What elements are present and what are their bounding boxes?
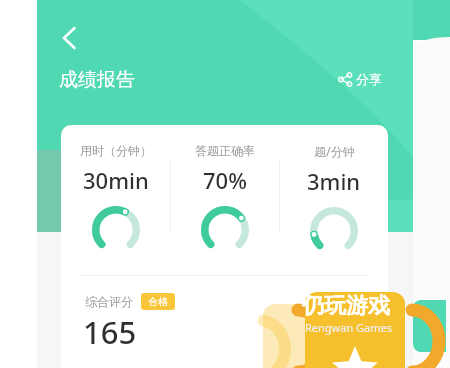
staticText: 合格 xyxy=(148,295,168,308)
staticText: 题/分钟 xyxy=(314,143,355,159)
staticText: 答题正确率 xyxy=(195,143,255,158)
button[interactable]: Back xyxy=(49,18,89,58)
staticText: 用时（分钟） xyxy=(80,143,152,158)
staticText: 3min xyxy=(307,166,361,196)
staticText: 仍玩游戏 xyxy=(302,292,390,320)
staticText: 成绩报告 xyxy=(59,68,135,92)
staticText: 综合评分 xyxy=(85,294,133,309)
staticText: 分享 xyxy=(356,71,382,87)
staticText: 165 xyxy=(83,311,137,353)
staticText: 70% xyxy=(203,165,247,195)
button[interactable]: 分享 xyxy=(335,68,386,90)
staticText: Rengwan Games xyxy=(305,320,393,335)
staticText: 30min xyxy=(83,165,149,195)
